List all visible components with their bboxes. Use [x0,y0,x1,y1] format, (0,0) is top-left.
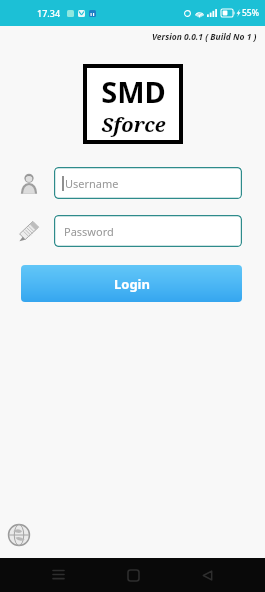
staticText: Login [114,275,150,293]
staticText: Username [65,176,119,191]
button[interactable]: Username [54,167,242,199]
staticText: 17.34 [37,7,61,19]
button[interactable]: Back [190,558,224,592]
button[interactable]: Home [116,558,150,592]
button[interactable]: Language [7,523,31,547]
staticText: Password [64,224,114,239]
button[interactable]: Login [21,265,242,302]
button[interactable]: Password [54,215,242,247]
staticText: 55% [242,7,259,19]
staticText: Sforce [101,111,166,138]
staticText: SMD [101,72,166,111]
button[interactable]: Recent apps [41,558,75,592]
staticText: Version 0.0.1 ( Build No 1 ) [152,31,257,43]
